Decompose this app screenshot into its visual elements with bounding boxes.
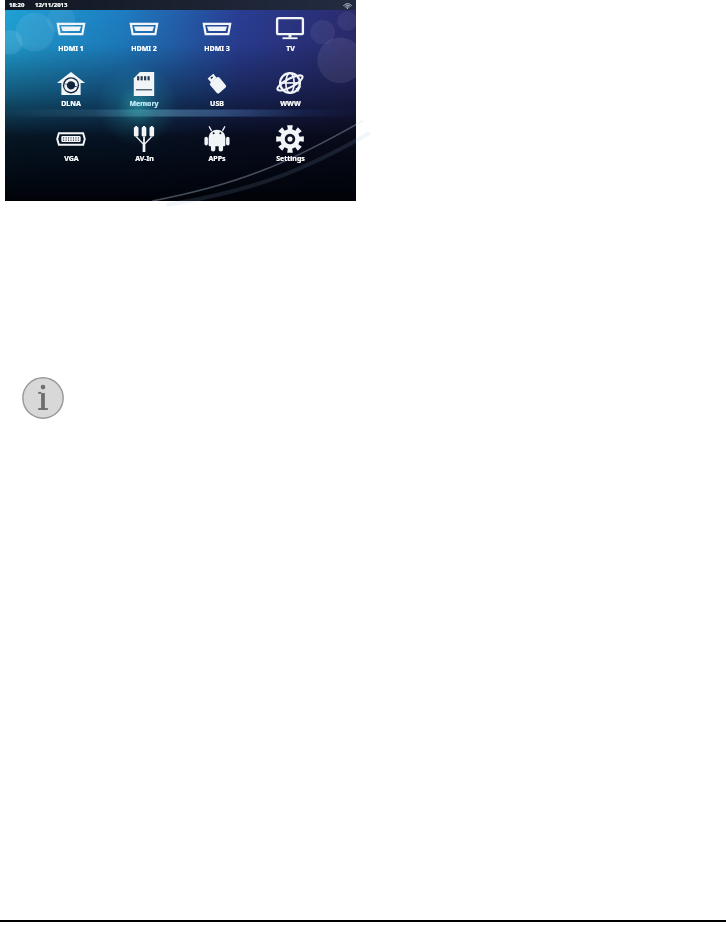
staticText: HDMI 1 xyxy=(58,44,84,54)
staticText: Settings xyxy=(276,154,305,164)
staticText: 18:20 xyxy=(9,1,25,9)
button[interactable]: HDMI 3 xyxy=(202,16,232,54)
staticText: WWW xyxy=(280,99,301,109)
staticText: 12/11/2013 xyxy=(35,1,68,9)
button[interactable]: WWW xyxy=(275,71,305,109)
staticText: DLNA xyxy=(61,99,81,109)
button[interactable]: Information xyxy=(22,377,64,419)
button[interactable]: HDMI 2 xyxy=(129,16,159,54)
staticText: USB xyxy=(210,99,224,109)
button[interactable]: HDMI 1 xyxy=(56,16,86,54)
other: Wi-Fi signal xyxy=(343,2,352,9)
staticText: Memory xyxy=(129,99,159,109)
button[interactable]: Settings xyxy=(275,126,305,164)
staticText: APPs xyxy=(208,154,226,164)
staticText: VGA xyxy=(64,154,79,164)
staticText: TV xyxy=(286,44,295,54)
staticText: HDMI 2 xyxy=(131,44,157,54)
button[interactable]: VGA xyxy=(56,126,86,164)
staticText: AV-In xyxy=(135,154,154,164)
button[interactable]: USB xyxy=(202,71,232,109)
staticText: HDMI 3 xyxy=(204,44,230,54)
button[interactable]: Memory xyxy=(129,71,159,109)
button[interactable]: TV xyxy=(275,16,305,54)
button[interactable]: AV-In xyxy=(129,126,159,164)
button[interactable]: DLNA xyxy=(56,71,86,109)
button[interactable]: APPs xyxy=(202,126,232,164)
